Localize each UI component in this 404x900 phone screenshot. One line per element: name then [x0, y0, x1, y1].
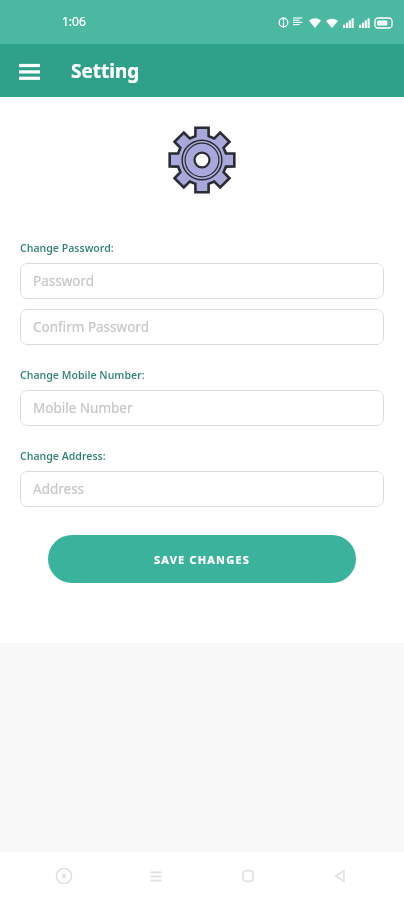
staticText: Setting [71, 58, 140, 84]
button[interactable]: Address [20, 471, 384, 507]
staticText: Mobile Number [33, 399, 133, 417]
button[interactable]: Mobile Number [20, 390, 384, 426]
button[interactable]: Recent apps [110, 852, 202, 900]
button[interactable]: Password [20, 263, 384, 299]
staticText: Address [33, 480, 85, 498]
staticText: Change Address: [20, 449, 106, 463]
button[interactable]: Open navigation menu [10, 52, 48, 90]
button[interactable]: Confirm Password [20, 309, 384, 345]
button[interactable]: Assistant [18, 852, 110, 900]
staticText: Change Mobile Number: [20, 368, 145, 382]
staticText: 1:06 [62, 13, 86, 29]
staticText: Password [33, 272, 95, 290]
staticText: Change Password: [20, 241, 114, 255]
button[interactable]: SAVE CHANGES [48, 535, 356, 583]
staticText: Confirm Password [33, 318, 149, 336]
button[interactable]: Home [202, 852, 294, 900]
staticText: SAVE CHANGES [154, 552, 251, 567]
